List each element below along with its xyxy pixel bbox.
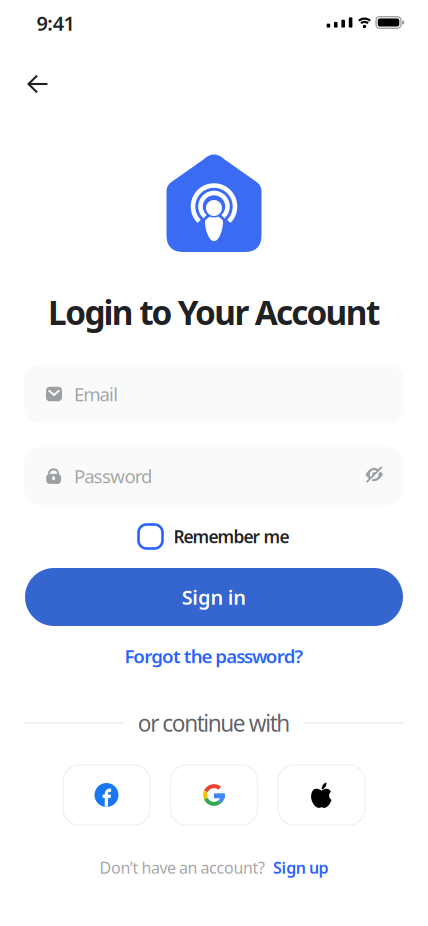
button[interactable]: Sign in [25,568,403,626]
button[interactable]: Email [24,365,404,423]
staticText: Password [74,464,152,488]
staticText: Email [74,382,118,406]
staticText: Don’t have an account? [99,857,265,878]
button[interactable]: Show password [359,459,389,489]
staticText: Login to Your Account [48,290,380,334]
staticText: or continue with [138,708,290,738]
button[interactable]: Sign up [273,857,329,878]
staticText: Sign up [273,857,329,878]
staticText: Sign in [182,584,246,610]
button[interactable]: Password [24,447,404,505]
button[interactable]: Continue with Google [170,765,257,825]
staticText: Remember me [173,525,289,548]
button[interactable]: Forgot the password? [124,644,303,668]
staticText: 9:41 [36,10,74,36]
button[interactable]: Back [24,70,52,98]
button[interactable]: Continue with Apple [278,765,365,825]
staticText: Forgot the password? [124,644,303,668]
button[interactable]: Continue with Facebook [63,765,150,825]
button[interactable]: Remember me [138,524,289,548]
